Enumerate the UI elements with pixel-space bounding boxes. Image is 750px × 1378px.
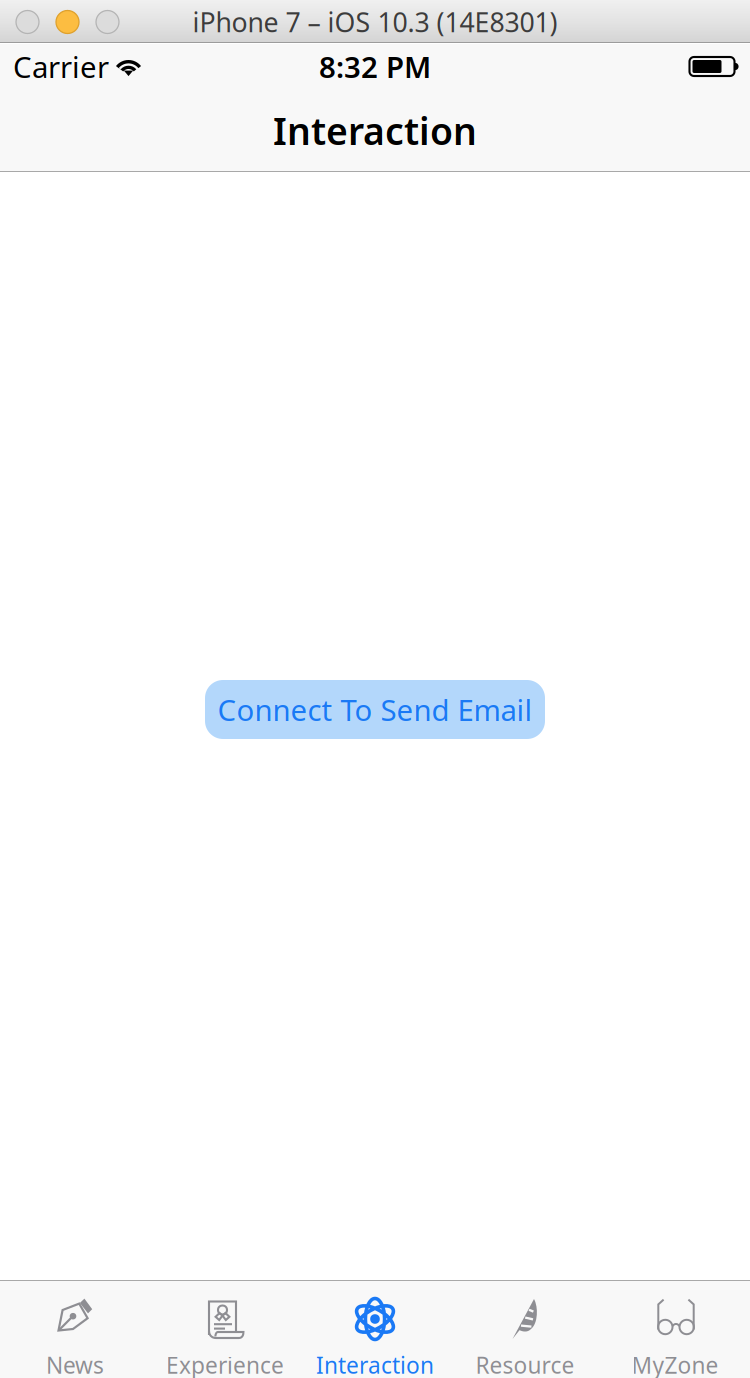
staticText: MyZone xyxy=(631,1350,718,1378)
button[interactable]: Interaction xyxy=(300,1280,450,1378)
staticText: 8:32 PM xyxy=(319,47,431,86)
staticText: Interaction xyxy=(316,1350,434,1378)
staticText: News xyxy=(46,1350,104,1378)
staticText: iPhone 7 – iOS 10.3 (14E8301) xyxy=(192,4,557,40)
staticText: Resource xyxy=(475,1350,574,1378)
staticText: Connect To Send Email xyxy=(217,690,532,729)
button[interactable]: Experience xyxy=(150,1280,300,1378)
button[interactable]: News xyxy=(0,1280,150,1378)
staticText: Interaction xyxy=(273,106,477,155)
staticText: Experience xyxy=(166,1350,284,1378)
button[interactable]: Connect To Send Email xyxy=(205,680,545,739)
button[interactable]: MyZone xyxy=(600,1280,750,1378)
staticText: Carrier xyxy=(13,47,109,86)
button[interactable]: Resource xyxy=(450,1280,600,1378)
